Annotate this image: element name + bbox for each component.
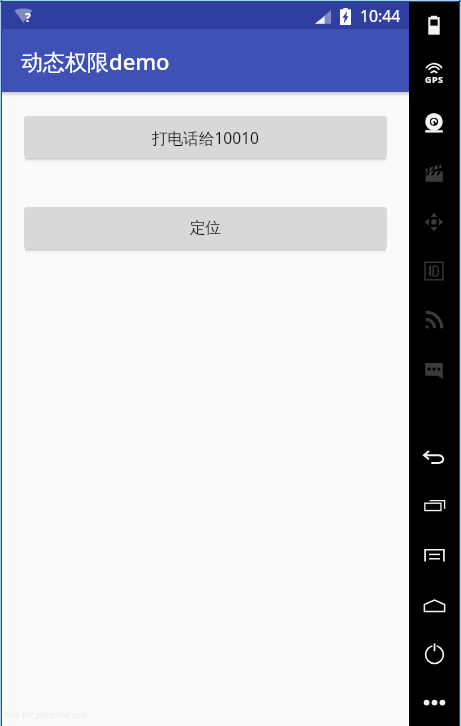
button[interactable]: Record screen (412, 152, 456, 194)
button[interactable]: 打电话给10010 (24, 116, 387, 158)
button[interactable]: GPS (412, 52, 456, 94)
button[interactable]: Home (412, 584, 456, 626)
button[interactable]: Device id (412, 250, 456, 292)
button[interactable]: Menu (412, 534, 456, 576)
staticText: 定位 (190, 218, 222, 238)
button[interactable]: Back (412, 436, 456, 478)
staticText: 动态权限demo (21, 46, 170, 76)
button[interactable]: 定位 (24, 207, 387, 249)
button[interactable]: Battery (412, 4, 456, 46)
staticText: free for personal use (4, 709, 88, 721)
staticText: 打电话给10010 (152, 127, 259, 148)
staticText: ? (25, 9, 31, 25)
button[interactable]: Overview (412, 484, 456, 526)
button[interactable]: More (412, 681, 456, 723)
button[interactable]: Camera (412, 103, 456, 145)
button[interactable]: Messages (412, 349, 456, 391)
button[interactable]: Move (412, 201, 456, 243)
button[interactable]: Cellular (412, 299, 456, 341)
staticText: 10:44 (360, 5, 401, 27)
staticText: GPS (425, 73, 444, 85)
button[interactable]: Power (412, 632, 456, 674)
